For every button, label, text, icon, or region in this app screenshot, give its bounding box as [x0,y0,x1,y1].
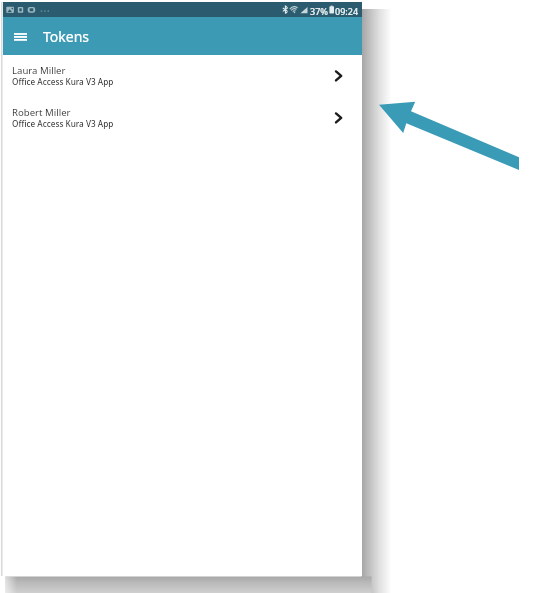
staticText: 09:24 [335,5,359,17]
button[interactable]: Robert Miller [3,97,362,139]
staticText: Office Access Kura V3 App [12,118,114,129]
staticText: Office Access Kura V3 App [12,76,114,87]
staticText: Robert Miller [12,106,71,119]
button[interactable]: Laura Miller [3,55,362,97]
staticText: Tokens [43,27,90,46]
button[interactable]: Open navigation menu [6,23,34,50]
staticText: Laura Miller [12,64,66,77]
staticText: 37% [310,5,328,17]
